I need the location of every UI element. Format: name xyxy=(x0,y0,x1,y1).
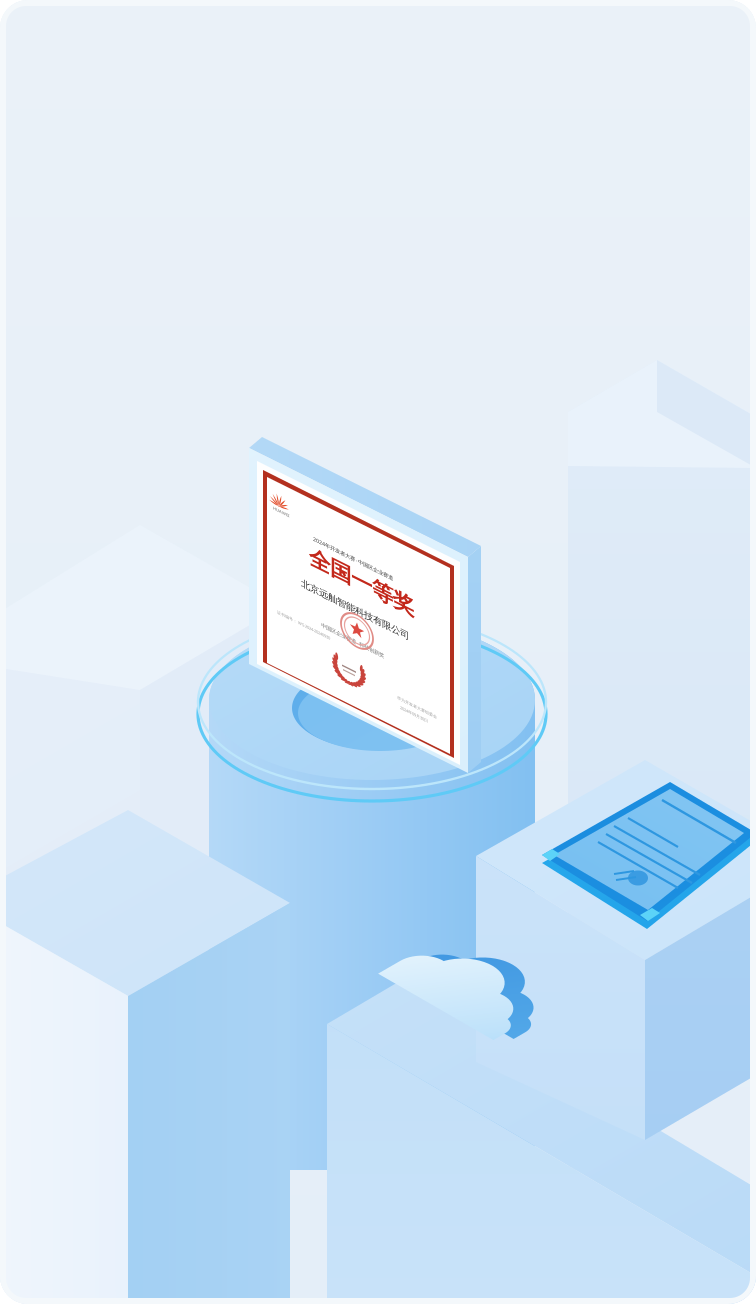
staticText: HUAWEI xyxy=(2,20,18,25)
